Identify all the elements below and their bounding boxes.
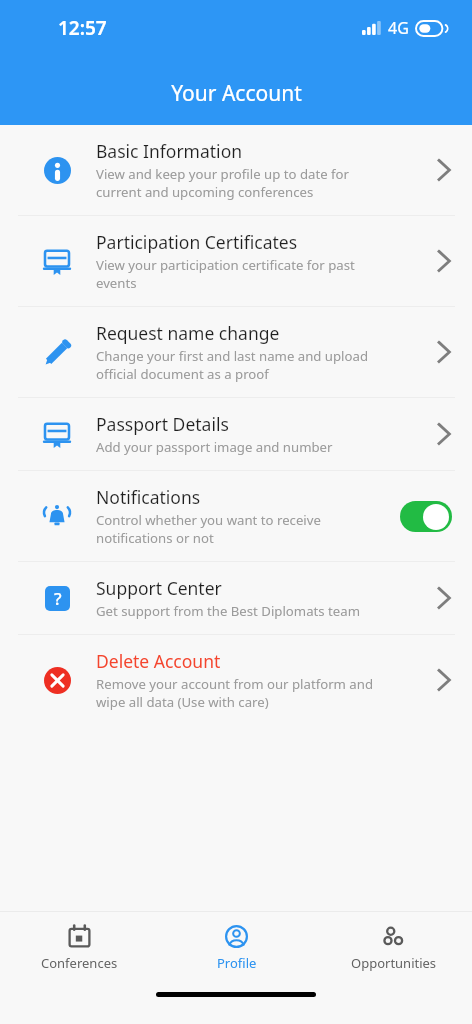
staticText: 4G: [388, 17, 409, 39]
staticText: Delete Account: [96, 649, 221, 673]
staticText: Conferences: [41, 954, 118, 972]
button[interactable]: Delete Account: [0, 635, 472, 725]
staticText: Control whether you want to receive noti…: [96, 511, 321, 547]
staticText: Profile: [217, 954, 257, 972]
staticText: Request name change: [96, 321, 280, 345]
button[interactable]: ?: [0, 562, 472, 634]
button[interactable]: Profile: [158, 912, 315, 984]
staticText: Get support from the Best Diplomats team: [96, 602, 360, 620]
staticText: Change your first and last name and uplo…: [96, 347, 369, 383]
staticText: Your Account: [171, 79, 302, 108]
staticText: Basic Information: [96, 139, 243, 163]
button[interactable]: Opportunities: [315, 912, 472, 984]
staticText: Remove your account from our platform an…: [96, 675, 374, 711]
staticText: View your participation certificate for …: [96, 256, 355, 292]
staticText: View and keep your profile up to date fo…: [96, 165, 349, 201]
button[interactable]: Notifications: [0, 471, 472, 561]
button[interactable]: Conferences: [0, 912, 158, 984]
staticText: Opportunities: [351, 954, 437, 972]
staticText: Add your passport image and number: [96, 438, 333, 456]
button[interactable]: Passport Details: [0, 398, 472, 470]
staticText: Notifications: [96, 485, 201, 509]
button[interactable]: Request name change: [0, 307, 472, 397]
button[interactable]: Basic Information: [0, 125, 472, 215]
button[interactable]: Notifications toggle: [400, 501, 452, 532]
staticText: ?: [54, 587, 62, 610]
staticText: Passport Details: [96, 412, 229, 436]
staticText: Participation Certificates: [96, 230, 298, 254]
staticText: Support Center: [96, 576, 222, 600]
button[interactable]: Participation Certificates: [0, 216, 472, 306]
staticText: 12:57: [58, 15, 107, 41]
